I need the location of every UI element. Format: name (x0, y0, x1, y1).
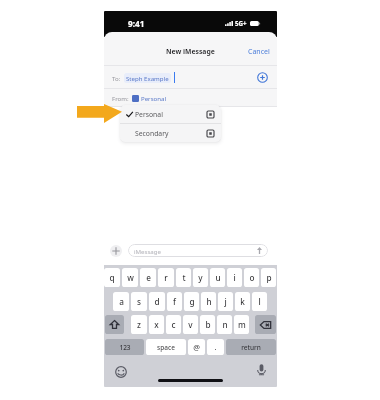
button[interactable]: v (183, 315, 198, 334)
button[interactable]: e (140, 268, 156, 287)
button[interactable]: j (218, 292, 233, 311)
button[interactable]: c (166, 315, 181, 334)
staticText: From: (112, 94, 129, 102)
staticText: y (198, 272, 203, 283)
staticText: Cancel (248, 47, 270, 57)
staticText: s (137, 296, 141, 307)
button[interactable]: h (201, 292, 216, 311)
staticText: m (238, 319, 246, 330)
button[interactable]: Personal (120, 105, 221, 123)
staticText: @ (193, 342, 200, 352)
staticText: n (222, 319, 228, 330)
staticText: d (154, 296, 160, 307)
button[interactable]: space (146, 339, 186, 355)
staticText: 5G+ (235, 19, 247, 27)
staticText: b (205, 319, 211, 330)
staticText: a (119, 296, 124, 307)
button[interactable]: Shift (105, 315, 124, 334)
button[interactable]: i (227, 268, 242, 287)
button[interactable]: d (149, 292, 165, 311)
button[interactable]: m (234, 315, 249, 334)
staticText: return (241, 343, 261, 352)
staticText: r (164, 272, 168, 283)
button[interactable]: Cancel (248, 47, 270, 57)
staticText: 9:41 (128, 18, 145, 29)
button[interactable]: Backspace (255, 315, 276, 334)
button[interactable]: @ (188, 339, 205, 355)
button[interactable]: iMessage (128, 244, 268, 257)
button[interactable]: g (184, 292, 199, 311)
staticText: q (109, 272, 115, 283)
staticText: Personal (141, 94, 167, 102)
button[interactable]: Dictation (257, 363, 266, 376)
staticText: . (214, 342, 217, 352)
staticText: f (173, 296, 176, 307)
button[interactable]: b (200, 315, 215, 334)
button[interactable]: Emoji (115, 366, 127, 378)
staticText: h (206, 296, 212, 307)
staticText: g (189, 296, 195, 307)
staticText: Steph Example (126, 74, 169, 82)
staticText: c (171, 319, 176, 330)
staticText: u (215, 272, 221, 283)
button[interactable]: Add contact (257, 72, 268, 83)
staticText: w (127, 272, 134, 283)
button[interactable]: k (235, 292, 250, 311)
button[interactable]: n (217, 315, 232, 334)
staticText: x (154, 319, 159, 330)
staticText: iMessage (134, 247, 161, 255)
staticText: Secondary (135, 129, 169, 138)
staticText: 123 (119, 343, 131, 352)
button[interactable]: z (131, 315, 147, 334)
button[interactable]: Secondary (120, 124, 221, 142)
staticText: l (258, 296, 261, 307)
staticText: v (188, 319, 193, 330)
staticText: space (157, 343, 175, 352)
staticText: k (240, 296, 245, 307)
button[interactable]: return (226, 339, 276, 355)
button[interactable]: u (210, 268, 225, 287)
button[interactable]: r (158, 268, 174, 287)
button[interactable]: Add attachment (110, 245, 122, 257)
button[interactable]: x (149, 315, 164, 334)
staticText: t (182, 272, 186, 283)
button[interactable]: t (176, 268, 191, 287)
button[interactable]: y (193, 268, 208, 287)
staticText: p (266, 272, 272, 283)
button[interactable]: w (122, 268, 138, 287)
button[interactable]: . (207, 339, 224, 355)
button[interactable]: s (131, 292, 147, 311)
staticText: z (137, 319, 141, 330)
staticText: Personal (135, 110, 163, 119)
button[interactable]: 123 (105, 339, 144, 355)
button[interactable]: o (244, 268, 259, 287)
staticText: To: (112, 74, 121, 82)
button[interactable]: p (261, 268, 276, 287)
staticText: o (249, 272, 255, 283)
button[interactable]: f (167, 292, 182, 311)
staticText: i (233, 272, 236, 283)
button[interactable]: l (252, 292, 267, 311)
staticText: j (224, 296, 227, 307)
button[interactable]: q (104, 268, 120, 287)
button[interactable]: a (113, 292, 129, 311)
staticText: e (146, 272, 151, 283)
staticText: New iMessage (166, 47, 215, 56)
